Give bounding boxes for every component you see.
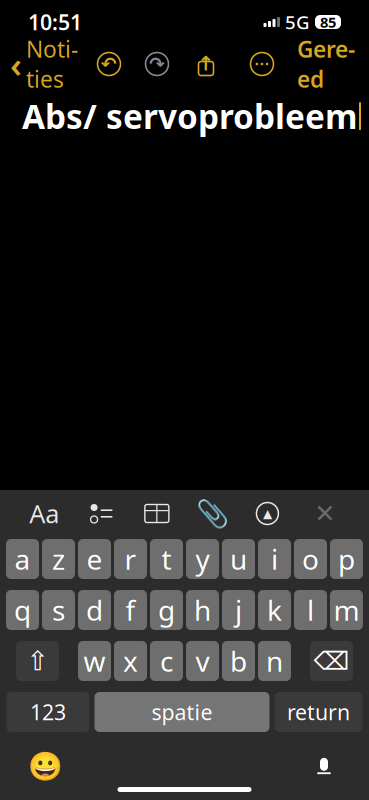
staticText: d: [86, 591, 103, 629]
staticText: s: [52, 591, 65, 629]
staticText: 10:51: [28, 8, 82, 36]
staticText: q: [14, 591, 31, 629]
button[interactable]: Delete: [310, 641, 353, 681]
staticText: return: [287, 698, 350, 726]
staticText: i: [271, 540, 278, 578]
button[interactable]: Text formatting: [29, 500, 59, 526]
staticText: e: [86, 540, 102, 578]
staticText: m: [333, 591, 359, 629]
button[interactable]: n: [258, 641, 291, 681]
button[interactable]: Shift: [16, 641, 59, 681]
staticText: a: [14, 540, 30, 578]
button[interactable]: s: [42, 590, 75, 630]
staticText: r: [124, 540, 136, 578]
staticText: v: [195, 642, 209, 680]
staticText: Aa: [29, 497, 59, 530]
staticText: f: [125, 591, 135, 629]
button[interactable]: Emoji: [28, 749, 62, 783]
staticText: x: [123, 642, 138, 680]
staticText: u: [230, 540, 247, 578]
button[interactable]: b: [222, 641, 255, 681]
staticText: n: [266, 642, 283, 680]
staticText: h: [194, 591, 211, 629]
staticText: b: [230, 642, 247, 680]
staticText: ✕: [314, 499, 335, 528]
button[interactable]: z: [42, 539, 75, 579]
staticText: 😀: [27, 750, 62, 782]
staticText: k: [267, 591, 282, 629]
button[interactable]: k: [258, 590, 291, 630]
staticText: 5G: [285, 10, 310, 34]
staticText: 85: [320, 12, 336, 32]
button[interactable]: ‹: [0, 28, 78, 100]
button[interactable]: x: [114, 641, 147, 681]
staticText: j: [235, 591, 242, 629]
staticText: ⇧: [26, 646, 48, 676]
button[interactable]: 123: [6, 692, 89, 732]
staticText: ↷: [149, 53, 165, 75]
staticText: o: [302, 540, 319, 578]
button[interactable]: Gereed: [297, 28, 369, 100]
button[interactable]: Undo: [92, 47, 126, 81]
staticText: z: [52, 540, 65, 578]
button[interactable]: spatie: [94, 692, 269, 732]
staticText: w: [83, 642, 105, 680]
staticText: c: [160, 642, 173, 680]
button[interactable]: Table: [144, 502, 170, 524]
button[interactable]: a: [6, 539, 39, 579]
staticText: Abs/ servoprobleem: [22, 94, 358, 138]
button[interactable]: Redo: [140, 47, 174, 81]
button[interactable]: Close keyboard: [310, 500, 340, 526]
button[interactable]: d: [78, 590, 111, 630]
button[interactable]: r: [114, 539, 147, 579]
staticText: ▲: [263, 507, 272, 520]
button[interactable]: i: [258, 539, 291, 579]
staticText: ↶: [101, 53, 117, 75]
button[interactable]: More options: [245, 47, 279, 81]
staticText: spatie: [151, 698, 212, 726]
staticText: 📎: [196, 498, 229, 529]
button[interactable]: o: [294, 539, 327, 579]
button[interactable]: c: [150, 641, 183, 681]
button[interactable]: m: [330, 590, 363, 630]
button[interactable]: y: [186, 539, 219, 579]
button[interactable]: e: [78, 539, 111, 579]
staticText: ‹: [10, 41, 22, 87]
button[interactable]: v: [186, 641, 219, 681]
staticText: p: [338, 540, 355, 578]
button[interactable]: Markup: [254, 502, 280, 524]
staticText: ⌫: [313, 647, 349, 675]
button[interactable]: h: [186, 590, 219, 630]
button[interactable]: Checklist: [89, 502, 115, 524]
staticText: y: [195, 540, 209, 578]
staticText: 123: [30, 698, 66, 726]
button[interactable]: t: [150, 539, 183, 579]
staticText: Notities: [26, 34, 78, 94]
button[interactable]: Attach: [199, 502, 225, 524]
staticText: ↑: [197, 52, 214, 75]
button[interactable]: u: [222, 539, 255, 579]
button[interactable]: g: [150, 590, 183, 630]
button[interactable]: Share: [189, 47, 223, 81]
button[interactable]: l: [294, 590, 327, 630]
staticText: l: [307, 591, 314, 629]
staticText: Gereed: [297, 34, 355, 94]
button[interactable]: w: [78, 641, 111, 681]
button[interactable]: f: [114, 590, 147, 630]
staticText: t: [161, 540, 171, 578]
button[interactable]: return: [274, 692, 362, 732]
staticText: g: [158, 591, 175, 629]
button[interactable]: p: [330, 539, 363, 579]
button[interactable]: Dictation: [307, 749, 341, 783]
button[interactable]: j: [222, 590, 255, 630]
button[interactable]: q: [6, 590, 39, 630]
